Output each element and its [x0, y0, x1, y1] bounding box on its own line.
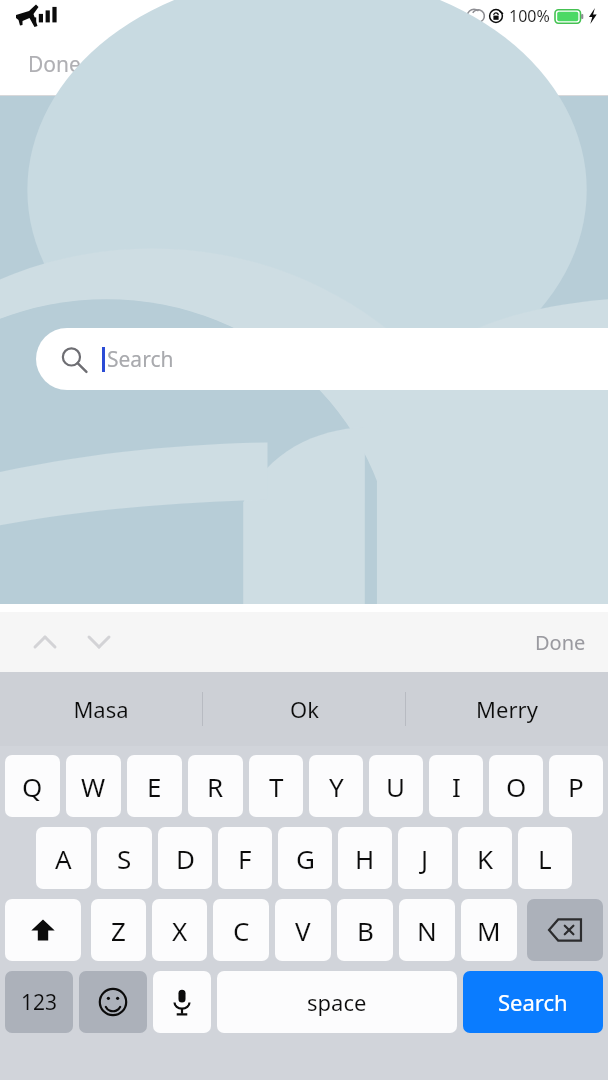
staticText: Merry [476, 694, 538, 724]
button[interactable]: D [158, 827, 212, 889]
button[interactable]: Shift [5, 899, 81, 961]
staticText: 123 [21, 988, 58, 1017]
staticText: Q [22, 769, 43, 804]
button[interactable]: Search [36, 328, 608, 390]
staticText: Done [28, 50, 81, 79]
staticText: D [176, 841, 195, 876]
button[interactable]: I [429, 755, 483, 817]
staticText: Ok [290, 694, 319, 724]
button[interactable]: S [97, 827, 152, 889]
staticText: N [417, 913, 437, 948]
staticText: X [172, 913, 188, 948]
staticText: F [238, 841, 252, 876]
button[interactable]: L [518, 827, 572, 889]
button[interactable]: Masa [0, 672, 202, 746]
button[interactable]: X [152, 899, 207, 961]
staticText: Z [111, 913, 126, 948]
staticText: A [55, 841, 72, 876]
staticText: Search [498, 987, 568, 1017]
button[interactable]: Next field [76, 619, 122, 665]
staticText: K [477, 841, 494, 876]
button[interactable]: C [213, 899, 269, 961]
staticText: H [355, 841, 375, 876]
staticText: T [269, 769, 284, 804]
button[interactable]: P [549, 755, 603, 817]
button[interactable]: J [398, 827, 452, 889]
button[interactable]: Previous field [22, 619, 68, 665]
staticText: G [296, 841, 315, 876]
button[interactable]: T [249, 755, 303, 817]
button[interactable]: Merry [406, 672, 608, 746]
staticText: S [117, 841, 132, 876]
staticText: V [295, 913, 311, 948]
staticText: B [357, 913, 374, 948]
button[interactable]: space [217, 971, 457, 1033]
staticText: L [538, 841, 552, 876]
button[interactable]: V [275, 899, 331, 961]
staticText: O [506, 769, 527, 804]
staticText: J [421, 841, 429, 876]
button[interactable]: Search [463, 971, 603, 1033]
button[interactable]: 123 [5, 971, 73, 1033]
button[interactable]: G [278, 827, 332, 889]
button[interactable]: Done [513, 619, 608, 666]
button[interactable]: K [458, 827, 512, 889]
staticText: Masa [73, 694, 129, 724]
staticText: space [307, 987, 367, 1017]
staticText: W [81, 769, 106, 804]
button[interactable]: Dictate [153, 971, 211, 1033]
staticText: Search [107, 345, 174, 374]
button[interactable]: Backspace [527, 899, 603, 961]
staticText: R [207, 769, 224, 804]
button[interactable]: W [66, 755, 121, 817]
staticText: M [477, 913, 501, 948]
staticText: C [233, 913, 250, 948]
staticText: U [386, 769, 406, 804]
button[interactable]: Y [309, 755, 363, 817]
button[interactable]: M [461, 899, 517, 961]
button[interactable]: E [127, 755, 182, 817]
staticText: Done [535, 629, 586, 656]
staticText: P [568, 769, 584, 804]
staticText: E [147, 769, 162, 804]
button[interactable]: H [338, 827, 392, 889]
staticText: Y [329, 769, 344, 804]
staticText: I [452, 769, 461, 804]
button[interactable]: R [188, 755, 243, 817]
button[interactable]: N [399, 899, 455, 961]
button[interactable]: Z [91, 899, 146, 961]
button[interactable]: F [218, 827, 272, 889]
button[interactable]: Done [0, 38, 109, 91]
button[interactable]: Emoji [79, 971, 147, 1033]
button[interactable]: Q [5, 755, 60, 817]
button[interactable]: B [337, 899, 393, 961]
button[interactable]: A [36, 827, 91, 889]
button[interactable]: Ok [203, 672, 405, 746]
staticText: 100% [509, 5, 550, 27]
button[interactable]: U [369, 755, 423, 817]
button[interactable]: O [489, 755, 543, 817]
